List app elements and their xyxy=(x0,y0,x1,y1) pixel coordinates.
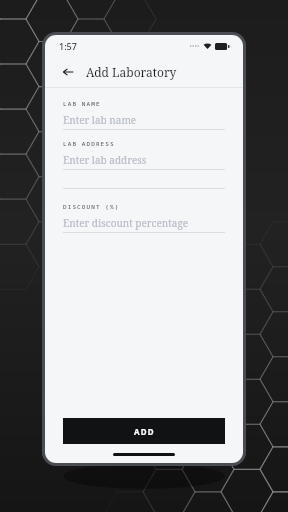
staticText: 1:57 xyxy=(59,40,77,52)
staticText: Enter lab name xyxy=(63,113,137,127)
staticText: ADD xyxy=(134,426,155,437)
staticText: LAB ADDRESS xyxy=(63,140,115,148)
staticText: Add Laboratory xyxy=(86,64,177,80)
button[interactable]: Enter discount percentage xyxy=(63,215,225,230)
button[interactable]: Enter lab address xyxy=(63,152,225,167)
staticText: Enter lab address xyxy=(63,153,147,167)
button[interactable]: Enter lab name xyxy=(63,112,225,127)
staticText: DISCOUNT (%) xyxy=(63,203,120,211)
staticText: Enter discount percentage xyxy=(63,216,189,230)
staticText: LAB NAME xyxy=(63,100,101,108)
button[interactable]: Back xyxy=(59,63,77,81)
button[interactable]: ADD xyxy=(63,418,225,444)
